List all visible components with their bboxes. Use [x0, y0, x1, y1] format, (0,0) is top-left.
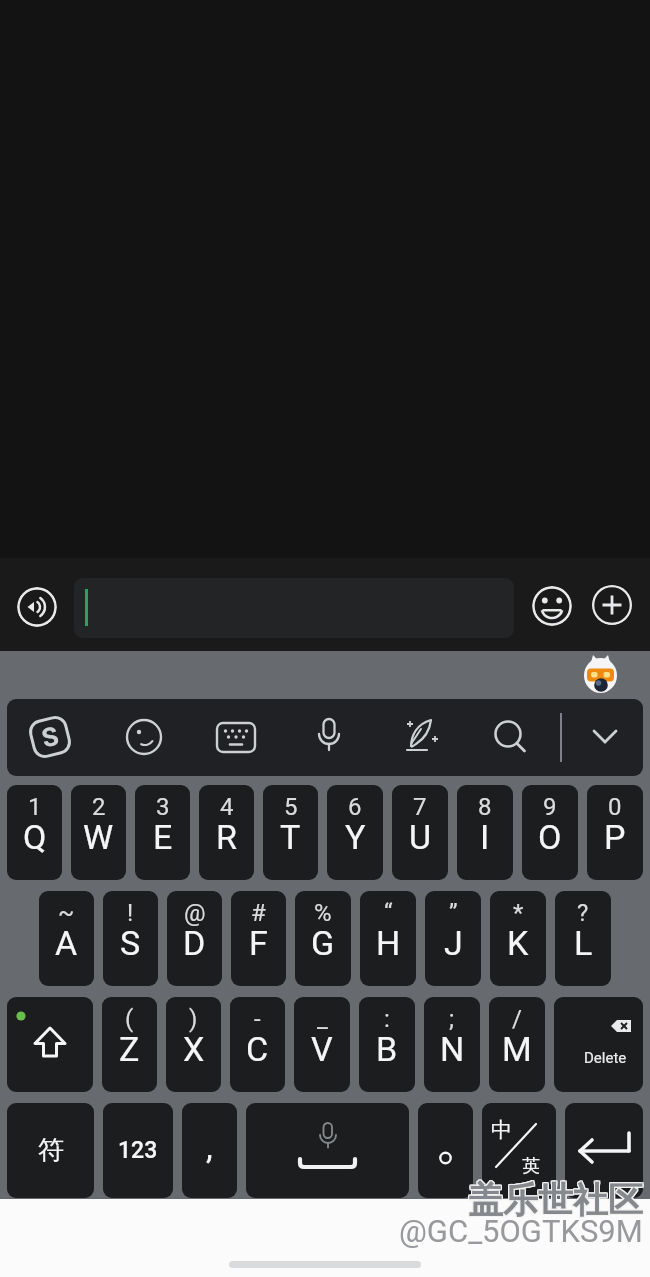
staticText: U	[409, 817, 432, 857]
staticText: 123	[118, 1137, 158, 1164]
button[interactable]	[592, 585, 632, 625]
button[interactable]: “	[360, 891, 416, 986]
button[interactable]: /	[489, 997, 545, 1092]
button[interactable]: _	[294, 997, 350, 1092]
staticText: N	[440, 1029, 465, 1069]
button[interactable]: -	[230, 997, 285, 1092]
button[interactable]: 中	[482, 1103, 556, 1198]
button[interactable]: %	[295, 891, 351, 986]
staticText: ”	[449, 899, 458, 927]
button[interactable]: S	[25, 712, 75, 762]
button[interactable]	[397, 711, 447, 761]
staticText: D	[183, 923, 206, 963]
staticText: @GC_5OGTKS9M	[399, 1213, 643, 1249]
staticText: E	[153, 817, 173, 857]
staticText: A	[55, 923, 78, 963]
staticText: *	[513, 899, 524, 927]
button[interactable]: #	[231, 891, 286, 986]
staticText: W	[83, 817, 114, 857]
button[interactable]: 1	[7, 785, 62, 880]
staticText: Delete	[584, 1049, 627, 1067]
staticText: ,	[206, 1127, 213, 1167]
button[interactable]	[532, 586, 572, 626]
staticText: B	[376, 1029, 398, 1069]
staticText: G	[311, 923, 335, 963]
button[interactable]: !	[103, 891, 158, 986]
staticText: F	[249, 923, 268, 963]
staticText: %	[314, 899, 332, 927]
staticText: I	[480, 817, 490, 857]
staticText: S	[120, 923, 141, 963]
button[interactable]	[565, 1103, 643, 1198]
button[interactable]: ;	[424, 997, 480, 1092]
staticText: :	[384, 1005, 390, 1033]
staticText: _	[317, 1005, 328, 1033]
button[interactable]	[304, 711, 354, 761]
staticText: Q	[23, 817, 47, 857]
staticText: @	[184, 899, 206, 927]
staticText: !	[127, 899, 134, 927]
button[interactable]: (	[102, 997, 157, 1092]
button[interactable]: 5	[263, 785, 318, 880]
button[interactable]: @	[167, 891, 222, 986]
staticText: ;	[449, 1005, 455, 1033]
staticText: H	[376, 923, 401, 963]
button[interactable]: ?	[555, 891, 611, 986]
button[interactable]: 7	[392, 785, 448, 880]
button[interactable]: 6	[327, 785, 383, 880]
staticText: 2	[92, 793, 106, 821]
button[interactable]	[211, 712, 261, 762]
button[interactable]: :	[359, 997, 415, 1092]
button[interactable]: 8	[457, 785, 513, 880]
staticText: 7	[413, 793, 427, 821]
staticText: 盖乐世社区	[469, 1179, 644, 1223]
staticText: C	[246, 1029, 269, 1069]
staticText: /	[512, 1005, 522, 1033]
button[interactable]	[17, 587, 57, 627]
button[interactable]	[582, 652, 619, 694]
staticText: 4	[220, 793, 234, 821]
button[interactable]: 4	[199, 785, 254, 880]
staticText: 盖乐世社区	[468, 1178, 643, 1222]
staticText: #	[251, 899, 266, 927]
staticText: 盖乐世社区	[468, 1179, 643, 1223]
button[interactable]	[7, 997, 93, 1092]
staticText: 盖乐世社区	[468, 1177, 643, 1221]
button[interactable]: *	[490, 891, 546, 986]
staticText: “	[384, 899, 393, 927]
button[interactable]: 符	[7, 1103, 94, 1198]
staticText: M	[502, 1029, 532, 1069]
staticText: X	[183, 1029, 205, 1069]
button[interactable]: )	[166, 997, 221, 1092]
button[interactable]	[74, 578, 514, 638]
staticText: L	[574, 923, 593, 963]
staticText: -	[254, 1005, 261, 1033]
staticText: 0	[608, 793, 622, 821]
button[interactable]	[485, 712, 535, 762]
button[interactable]	[119, 712, 169, 762]
button[interactable]: ”	[425, 891, 481, 986]
staticText: 5	[284, 793, 298, 821]
button[interactable]: 0	[587, 785, 643, 880]
button[interactable]: 3	[135, 785, 190, 880]
staticText: 盖乐世社区	[467, 1178, 642, 1222]
button[interactable]	[418, 1103, 473, 1198]
staticText: 盖乐世社区	[469, 1178, 644, 1222]
staticText: V	[311, 1029, 333, 1069]
button[interactable]: 2	[71, 785, 126, 880]
button[interactable]	[246, 1103, 409, 1198]
staticText: 盖乐世社区	[467, 1177, 642, 1221]
button[interactable]: 9	[522, 785, 578, 880]
staticText: 3	[156, 793, 170, 821]
staticText: Y	[345, 817, 366, 857]
button[interactable]: ~	[39, 891, 94, 986]
button[interactable]	[577, 712, 633, 768]
staticText: R	[216, 817, 237, 857]
button[interactable]: ,	[182, 1103, 237, 1198]
button[interactable]: Delete	[554, 997, 643, 1092]
staticText: T	[280, 817, 301, 857]
button[interactable]: 123	[103, 1103, 173, 1198]
staticText: P	[604, 817, 626, 857]
staticText: K	[507, 923, 529, 963]
staticText: 9	[543, 793, 557, 821]
